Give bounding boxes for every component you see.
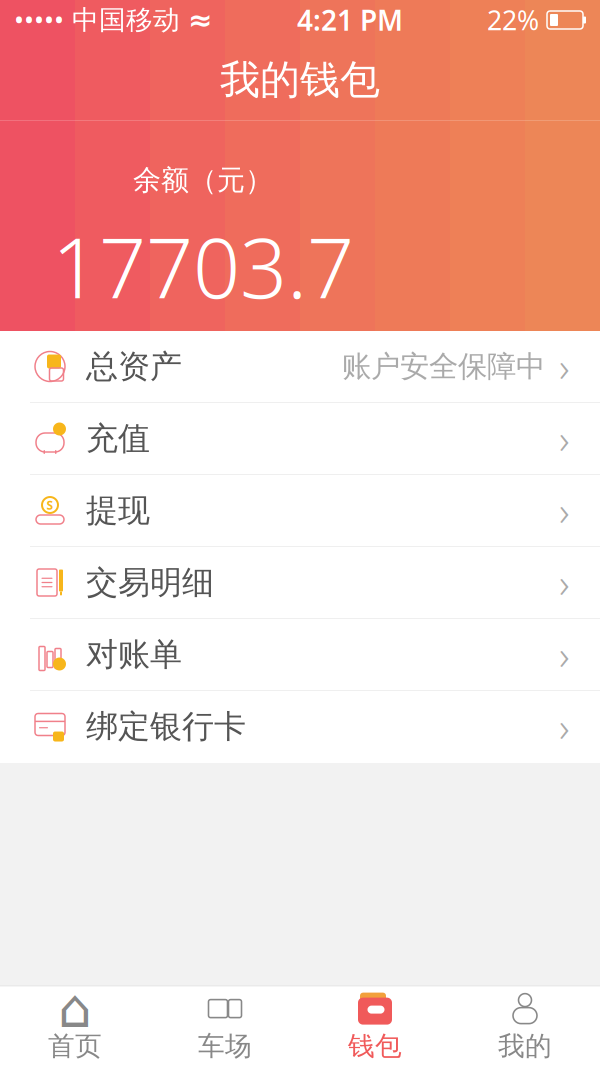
staticText: 22% xyxy=(487,2,539,38)
button[interactable]: 绑定银行卡 xyxy=(0,691,600,763)
staticText: 绑定银行卡 xyxy=(86,707,246,746)
staticText: 首页 xyxy=(48,1030,102,1062)
staticText: 中国移动 xyxy=(72,4,180,36)
staticText: 4:21 PM xyxy=(297,1,403,39)
button[interactable]: 车场 xyxy=(150,986,300,1067)
staticText: 余额（元） xyxy=(133,163,273,197)
button[interactable]: 总资产 xyxy=(0,331,600,403)
staticText: 充值 xyxy=(86,419,150,458)
staticText: › xyxy=(559,628,570,681)
staticText: ⌂ xyxy=(58,978,92,1039)
staticText: 我的 xyxy=(498,1030,552,1062)
staticText: 账户安全保障中 xyxy=(342,348,545,384)
staticText: S xyxy=(46,497,53,513)
button[interactable]: S xyxy=(0,475,600,547)
staticText: 提现 xyxy=(86,491,150,530)
staticText: › xyxy=(559,484,570,537)
staticText: › xyxy=(559,556,570,609)
staticText: ≈ xyxy=(188,3,213,37)
button[interactable]: ⌂ xyxy=(0,986,150,1067)
staticText: ••••• xyxy=(14,2,64,38)
staticText: 总资产 xyxy=(86,347,182,386)
staticText: 我的钱包 xyxy=(220,55,380,104)
staticText: 交易明细 xyxy=(86,563,214,602)
button[interactable]: 我的 xyxy=(450,986,600,1067)
button[interactable]: 对账单 xyxy=(0,619,600,691)
staticText: › xyxy=(559,340,570,393)
staticText: 钱包 xyxy=(348,1030,402,1062)
button[interactable]: 充值 xyxy=(0,403,600,475)
staticText: 17703.7 xyxy=(52,211,354,321)
staticText: 对账单 xyxy=(86,635,182,674)
button[interactable]: 钱包 xyxy=(300,986,450,1067)
button[interactable]: 交易明细 xyxy=(0,547,600,619)
staticText: 车场 xyxy=(198,1030,252,1062)
staticText: › xyxy=(559,700,570,753)
staticText: › xyxy=(559,412,570,465)
